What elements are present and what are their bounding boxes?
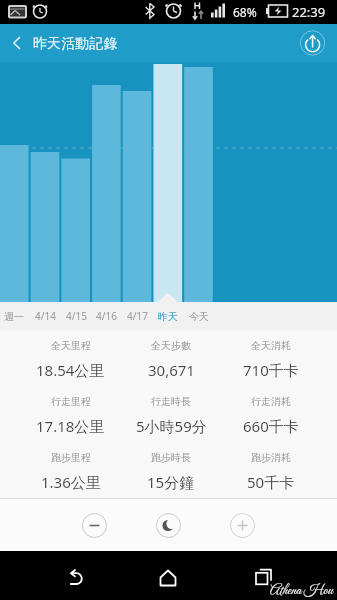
staticText: Athena Hou [270, 582, 333, 600]
staticText: 4/14 [35, 309, 56, 323]
staticText: 全天步數 [151, 339, 191, 352]
button[interactable]: 跑步時長 [121, 442, 221, 492]
staticText: 今天 [189, 310, 209, 323]
staticText: 跑步消耗 [251, 451, 291, 464]
button[interactable] [0, 24, 40, 62]
staticText: 4/15 [66, 309, 87, 323]
staticText: 15分鐘 [147, 472, 195, 492]
staticText: 4/17 [127, 309, 148, 323]
staticText: 全天消耗 [251, 339, 291, 352]
button[interactable] [239, 551, 287, 600]
staticText: 30,671 [148, 360, 195, 380]
button[interactable]: 全天步數 [121, 330, 221, 380]
button[interactable]: 行走消耗 [221, 386, 321, 436]
staticText: 710千卡 [243, 360, 299, 380]
button[interactable] [293, 24, 337, 62]
staticText: 17.18公里 [36, 416, 105, 436]
button[interactable]: 全天消耗 [221, 330, 321, 380]
staticText: 68% [233, 4, 257, 20]
button[interactable]: 4/17 [117, 302, 157, 330]
staticText: 行走消耗 [251, 395, 291, 408]
staticText: 行走時長 [151, 395, 191, 408]
staticText: 跑步里程 [51, 451, 91, 464]
button[interactable]: 今天 [179, 302, 219, 330]
button[interactable]: 週一 [0, 302, 34, 330]
staticText: 跑步時長 [151, 451, 191, 464]
button[interactable] [144, 551, 192, 600]
button[interactable]: 跑步里程 [20, 442, 121, 492]
button[interactable]: 4/14 [25, 302, 65, 330]
staticText: 50千卡 [247, 472, 295, 492]
button[interactable]: 行走里程 [20, 386, 121, 436]
button[interactable] [82, 513, 107, 538]
staticText: 昨天 [158, 310, 178, 323]
button[interactable]: 跑步消耗 [221, 442, 321, 492]
staticText: 週一 [4, 310, 24, 323]
staticText: 1.36公里 [41, 472, 101, 492]
staticText: 5小時59分 [136, 416, 207, 436]
button[interactable] [51, 551, 99, 600]
button[interactable]: 4/16 [86, 302, 126, 330]
button[interactable]: 昨天 [148, 302, 188, 330]
button[interactable] [230, 513, 255, 538]
button[interactable]: 4/15 [56, 302, 96, 330]
button[interactable]: 行走時長 [121, 386, 221, 436]
staticText: 4/16 [96, 309, 117, 323]
staticText: 全天里程 [51, 339, 91, 352]
button[interactable]: 全天里程 [20, 330, 121, 380]
staticText: 昨天活動記錄 [33, 35, 118, 52]
staticText: 22:39 [292, 3, 326, 21]
staticText: 660千卡 [243, 416, 299, 436]
staticText: 18.54公里 [36, 360, 105, 380]
button[interactable] [156, 513, 181, 538]
staticText: 行走里程 [51, 395, 91, 408]
